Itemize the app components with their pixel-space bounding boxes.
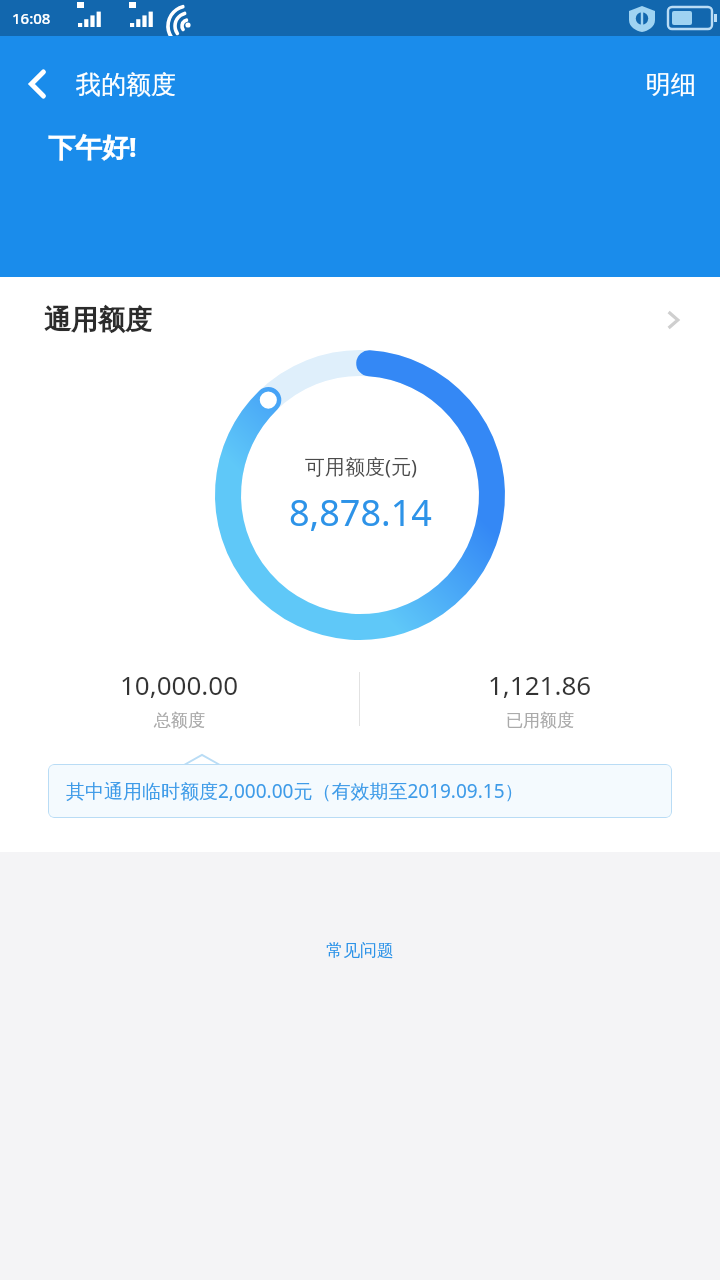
button[interactable]: Back bbox=[0, 46, 76, 122]
staticText: 8,878.14 bbox=[289, 488, 432, 537]
staticText: 16:08 bbox=[12, 8, 51, 28]
staticText: 其中通用临时额度2,000.00元（有效期至2019.09.15） bbox=[66, 778, 524, 804]
button[interactable]: 明细 bbox=[622, 53, 720, 116]
staticText: 10,000.00 bbox=[120, 667, 239, 702]
button[interactable]: 10,000.00 bbox=[0, 667, 359, 731]
button[interactable]: 通用额度 bbox=[0, 277, 720, 337]
staticText: 明细 bbox=[646, 69, 696, 100]
staticText: 下午好! bbox=[48, 128, 137, 165]
staticText: 我的额度 bbox=[76, 69, 176, 100]
button[interactable]: 1,121.86 bbox=[360, 667, 720, 731]
staticText: 已用额度 bbox=[506, 710, 574, 731]
staticText: 常见问题 bbox=[326, 940, 394, 961]
staticText: 可用额度(元) bbox=[305, 453, 417, 480]
button[interactable]: 常见问题 bbox=[302, 932, 418, 969]
staticText: 1,121.86 bbox=[488, 667, 592, 702]
staticText: 总额度 bbox=[154, 710, 205, 731]
staticText: 通用额度 bbox=[44, 303, 152, 337]
